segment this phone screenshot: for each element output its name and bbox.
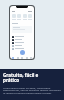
button[interactable]	[12, 35, 32, 38]
button[interactable]	[12, 38, 32, 41]
button[interactable]	[12, 47, 32, 50]
button[interactable]: Add	[20, 50, 25, 55]
button[interactable]	[28, 14, 32, 20]
button[interactable]	[12, 14, 16, 20]
button[interactable]	[12, 41, 32, 44]
button[interactable]	[12, 44, 32, 47]
button[interactable]	[12, 26, 32, 33]
button[interactable]	[17, 14, 21, 20]
staticText: Lorem ipsum dolor sit amet, consectetur …	[3, 86, 61, 95]
button[interactable]	[23, 14, 27, 20]
staticText: Gratuito, fácil e prático	[3, 72, 39, 83]
